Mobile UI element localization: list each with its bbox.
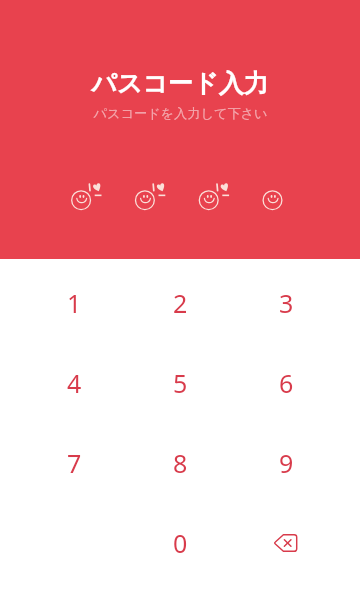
staticText: 1 bbox=[67, 286, 82, 320]
staticText: 3 bbox=[279, 286, 294, 320]
button[interactable]: 4 bbox=[21, 343, 127, 423]
staticText: パスコード入力 bbox=[91, 68, 269, 99]
staticText: 9 bbox=[279, 446, 294, 480]
staticText: 8 bbox=[173, 446, 188, 480]
button[interactable]: 0 bbox=[127, 503, 233, 583]
button[interactable]: 1 bbox=[21, 263, 127, 343]
button[interactable]: 6 bbox=[233, 343, 339, 423]
staticText: 6 bbox=[279, 366, 294, 400]
staticText: 2 bbox=[173, 286, 188, 320]
button[interactable]: Delete bbox=[233, 503, 339, 583]
staticText: 0 bbox=[173, 526, 188, 560]
button[interactable]: 9 bbox=[233, 423, 339, 503]
staticText: 5 bbox=[173, 366, 188, 400]
staticText: パスコードを入力して下さい bbox=[93, 105, 268, 122]
other: 3 of 4 digits entered bbox=[0, 0, 360, 259]
staticText: 7 bbox=[67, 446, 82, 480]
button[interactable]: 8 bbox=[127, 423, 233, 503]
button[interactable]: 5 bbox=[127, 343, 233, 423]
button[interactable]: 7 bbox=[21, 423, 127, 503]
staticText: 4 bbox=[67, 366, 82, 400]
button[interactable]: 3 bbox=[233, 263, 339, 343]
button[interactable]: 2 bbox=[127, 263, 233, 343]
